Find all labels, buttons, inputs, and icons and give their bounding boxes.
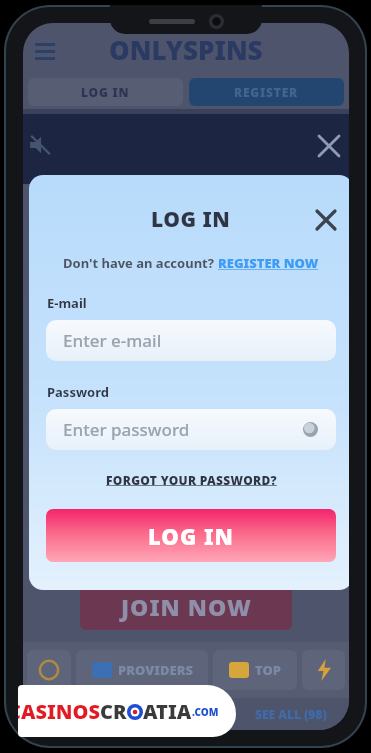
staticText: PROVIDERS (118, 661, 193, 679)
staticText: Enter password (63, 418, 190, 441)
button[interactable]: Search (27, 650, 71, 690)
button[interactable]: Enter e-mail (46, 320, 336, 361)
button[interactable]: SEE ALL (98) (255, 706, 327, 722)
button[interactable]: REGISTER NOW (218, 254, 319, 272)
other: Mute (29, 134, 51, 156)
button[interactable]: TOP (213, 650, 297, 690)
staticText: CASINOS (18, 698, 100, 725)
staticText: TOP (255, 661, 282, 679)
staticText: Password (47, 383, 109, 401)
staticText: Enter e-mail (63, 329, 162, 352)
staticText: ATIA (143, 698, 192, 725)
button[interactable]: FORGOT YOUR PASSWORD? (106, 472, 277, 488)
button[interactable]: JOIN NOW (80, 582, 292, 630)
staticText: CR (100, 698, 127, 725)
button[interactable]: Close (317, 211, 335, 229)
other: Hot (313, 659, 335, 681)
staticText: .COM (192, 705, 219, 719)
staticText: Don't have an account? (63, 254, 218, 272)
other: Search (38, 659, 60, 681)
button[interactable]: LOG IN (46, 509, 336, 562)
staticText: ONLYSPINS (109, 32, 263, 67)
button[interactable]: Enter password (46, 409, 336, 450)
staticText: JOIN NOW (121, 591, 252, 622)
button[interactable]: LOG IN (28, 78, 183, 106)
other: Close banner (317, 134, 341, 158)
staticText: LOG IN (81, 84, 130, 100)
staticText: LOG IN (151, 205, 231, 234)
button[interactable]: PROVIDERS (76, 650, 208, 690)
button[interactable]: REGISTER (189, 78, 344, 106)
staticText: LOG IN (148, 521, 234, 551)
button[interactable]: Hot (302, 650, 345, 690)
staticText: E-mail (47, 294, 87, 312)
button[interactable]: Menu (35, 43, 55, 60)
other: Show password (303, 422, 318, 437)
staticText: REGISTER (234, 84, 299, 100)
